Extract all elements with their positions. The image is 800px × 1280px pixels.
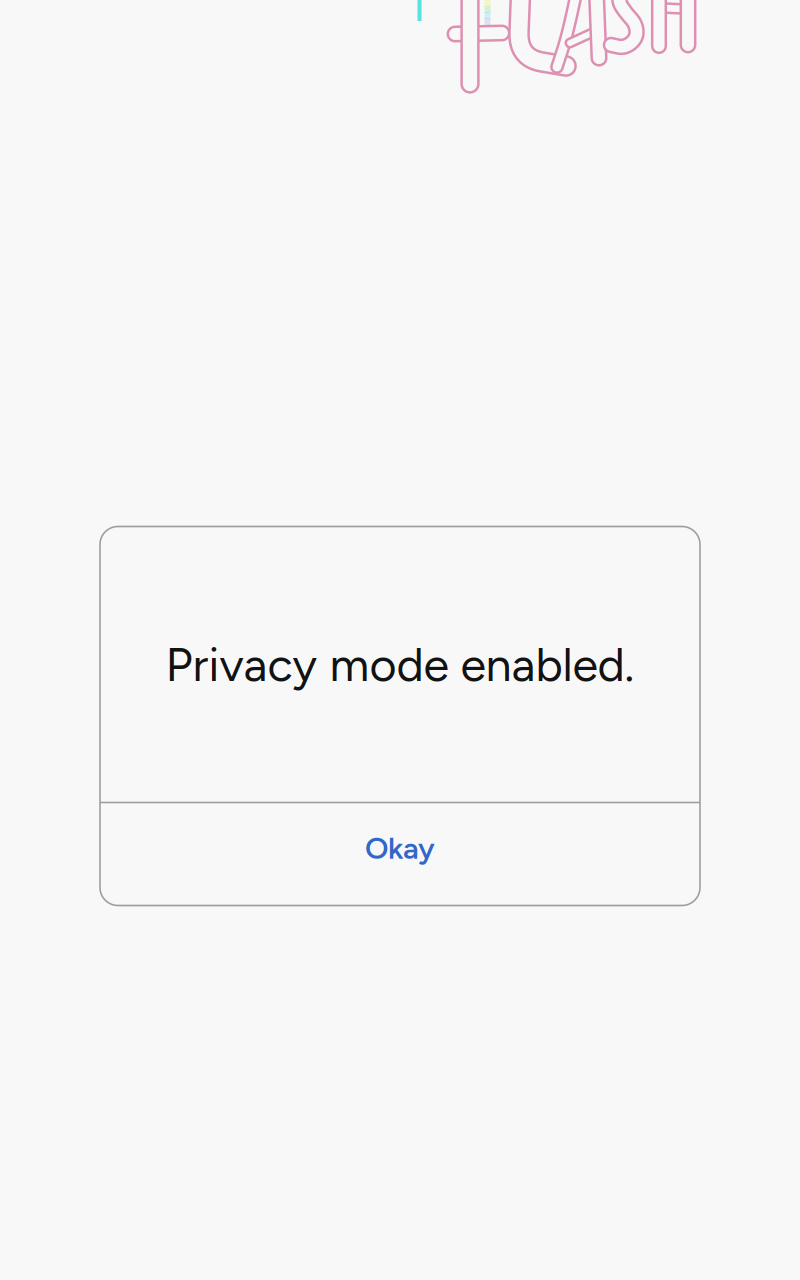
staticText: Privacy mode enabled. [165, 637, 634, 693]
staticText: Okay [365, 830, 435, 866]
button[interactable]: Okay [100, 803, 700, 905]
